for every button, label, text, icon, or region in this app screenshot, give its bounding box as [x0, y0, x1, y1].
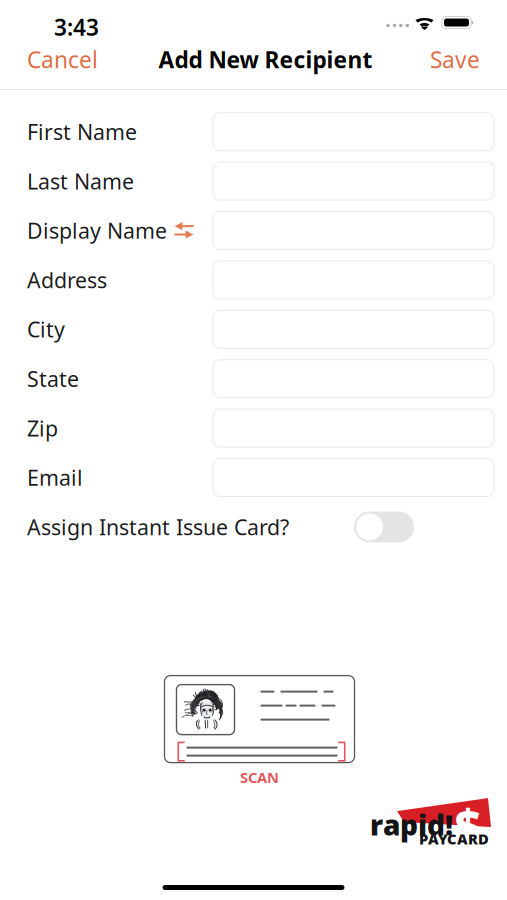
staticText: Add New Recipient: [158, 44, 372, 74]
button[interactable]: Assign Instant Issue Card: [354, 511, 414, 542]
staticText: Cancel: [27, 44, 98, 74]
staticText: State: [27, 364, 79, 393]
staticText: PAYCARD: [419, 829, 489, 849]
staticText: Zip: [27, 414, 58, 442]
button[interactable]: Cancel: [17, 36, 108, 82]
staticText: rapid!: [370, 806, 453, 843]
staticText: SCAN: [240, 768, 279, 787]
staticText: First Name: [27, 117, 137, 146]
staticText: Last Name: [27, 167, 134, 195]
button[interactable]: State text field: [213, 360, 494, 398]
button[interactable]: First Name text field: [213, 113, 494, 151]
button[interactable]: Email text field: [213, 458, 494, 496]
button[interactable]: Save: [420, 36, 490, 82]
staticText: City: [27, 315, 65, 343]
staticText: Display Name: [27, 216, 167, 245]
button[interactable]: Display Name text field: [213, 211, 494, 249]
button[interactable]: City text field: [213, 310, 494, 348]
staticText: Address: [27, 266, 107, 294]
staticText: Email: [27, 463, 83, 492]
staticText: Save: [430, 44, 480, 74]
staticText: $: [455, 795, 481, 855]
staticText: Assign Instant Issue Card?: [27, 513, 289, 541]
staticText: 3:43: [54, 12, 99, 42]
button[interactable]: Scan ID card: [152, 676, 354, 787]
